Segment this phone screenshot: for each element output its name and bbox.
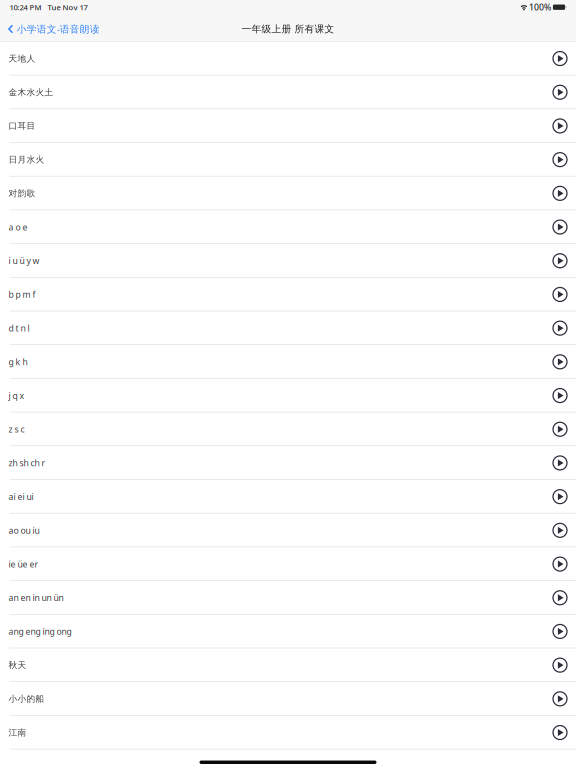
button[interactable]: Play i u ü y w (545, 244, 576, 278)
button[interactable]: Play zh sh ch r (545, 446, 576, 480)
staticText: a o e (9, 221, 28, 233)
button[interactable]: Play a o e (545, 210, 576, 244)
staticText: Tue Nov 17 (47, 2, 87, 12)
staticText: 秋天 (9, 660, 27, 671)
button[interactable]: z s c (0, 412, 545, 446)
button[interactable]: Play 江南 (545, 716, 576, 749)
button[interactable]: 秋天 (0, 648, 545, 682)
staticText: ie üe er (9, 558, 39, 570)
button[interactable]: Play 金木水火土 (545, 75, 576, 109)
staticText: ai ei ui (9, 491, 34, 502)
staticText: ao ou iu (9, 524, 40, 536)
button[interactable]: ie üe er (0, 547, 545, 581)
staticText: g k h (9, 356, 28, 368)
staticText: 江南 (9, 727, 27, 738)
button[interactable]: Play 口耳目 (545, 109, 576, 143)
button[interactable]: b p m f (0, 278, 545, 311)
button[interactable]: Play b p m f (545, 278, 576, 311)
button[interactable]: i u ü y w (0, 244, 545, 278)
staticText: ang eng ing ong (9, 625, 72, 637)
staticText: i u ü y w (9, 255, 40, 267)
button[interactable]: 口耳目 (0, 109, 545, 143)
button[interactable]: an en in un ün (0, 581, 545, 615)
staticText: 口耳目 (9, 120, 36, 131)
button[interactable]: Play g k h (545, 345, 576, 379)
staticText: d t n l (9, 322, 30, 334)
button[interactable]: Play 天地人 (545, 42, 576, 75)
staticText: z s c (9, 423, 25, 435)
staticText: 一年级上册 所有课文 (241, 23, 334, 35)
staticText: 小小的船 (9, 693, 45, 704)
button[interactable]: d t n l (0, 311, 545, 345)
button[interactable]: Play 秋天 (545, 648, 576, 682)
button[interactable]: 日月水火 (0, 143, 545, 176)
button[interactable]: Play 小小的船 (545, 682, 576, 716)
staticText: 10:24 PM (9, 2, 41, 12)
button[interactable]: Play ang eng ing ong (545, 615, 576, 648)
button[interactable]: a o e (0, 210, 545, 244)
staticText: j q x (9, 390, 25, 401)
button[interactable]: Play j q x (545, 379, 576, 412)
staticText: 100% (529, 1, 551, 13)
staticText: 金木水火土 (9, 87, 54, 98)
button[interactable]: Play ie üe er (545, 547, 576, 581)
button[interactable]: 小小的船 (0, 682, 545, 716)
button[interactable]: Play ao ou iu (545, 513, 576, 547)
button[interactable]: Play z s c (545, 412, 576, 446)
button[interactable]: 江南 (0, 716, 545, 749)
button[interactable]: ai ei ui (0, 480, 545, 513)
button[interactable]: ang eng ing ong (0, 615, 545, 648)
button[interactable]: g k h (0, 345, 545, 379)
button[interactable]: 金木水火土 (0, 75, 545, 109)
staticText: an en in un ün (9, 592, 64, 604)
button[interactable]: zh sh ch r (0, 446, 545, 480)
staticText: 天地人 (9, 53, 36, 64)
staticText: 日月水火 (9, 154, 45, 165)
button[interactable]: 对韵歌 (0, 176, 545, 210)
staticText: b p m f (9, 288, 36, 300)
staticText: 小学语文-语音朗读 (17, 22, 100, 36)
button[interactable]: Play 对韵歌 (545, 176, 576, 210)
staticText: zh sh ch r (9, 457, 46, 469)
button[interactable]: 天地人 (0, 42, 545, 75)
button[interactable]: ao ou iu (0, 513, 545, 547)
button[interactable]: j q x (0, 379, 545, 412)
staticText: 对韵歌 (9, 188, 36, 199)
button[interactable]: Play ai ei ui (545, 480, 576, 513)
button[interactable]: Play 日月水火 (545, 143, 576, 176)
button[interactable]: Play d t n l (545, 311, 576, 345)
button[interactable]: 小学语文-语音朗读 (0, 17, 106, 41)
button[interactable]: Play an en in un ün (545, 581, 576, 615)
